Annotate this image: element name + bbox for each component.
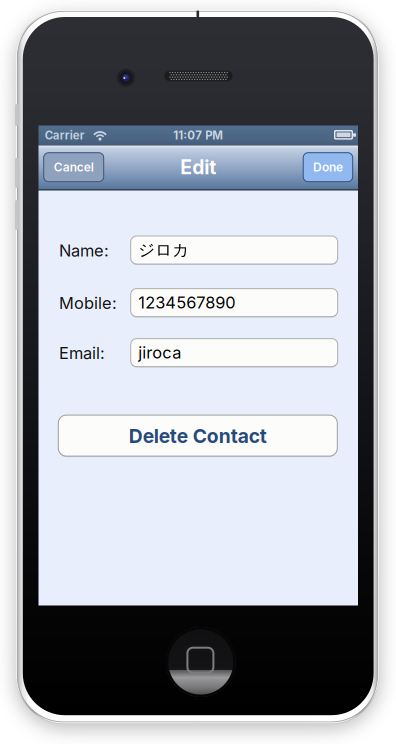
staticText: ジロカ	[138, 240, 189, 260]
staticText: 11:07 PM	[173, 128, 223, 142]
staticText: Cancel	[54, 160, 94, 174]
staticText: Mobile:	[59, 293, 117, 313]
staticText: jiroca	[138, 343, 181, 362]
button[interactable]: Done	[303, 153, 353, 182]
staticText: Name:	[59, 241, 109, 260]
staticText: Edit	[180, 156, 216, 179]
staticText: 1234567890	[138, 293, 235, 312]
button[interactable]: Delete Contact	[58, 415, 337, 457]
staticText: Done	[313, 160, 343, 174]
staticText: Carrier	[45, 128, 85, 142]
staticText: Delete Contact	[129, 424, 267, 447]
staticText: Email:	[59, 343, 105, 363]
button[interactable]: Cancel	[44, 153, 104, 182]
